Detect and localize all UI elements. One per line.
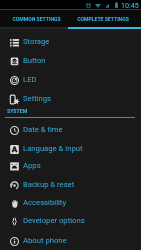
staticText: LED	[23, 75, 37, 84]
button[interactable]: Settings	[0, 90, 141, 109]
button[interactable]: Button	[0, 52, 141, 71]
button[interactable]: Storage	[0, 33, 141, 52]
staticText: COMPLETE SETTINGS	[77, 16, 129, 22]
button[interactable]: Apps	[0, 157, 141, 176]
button[interactable]: Accessibility	[0, 194, 141, 213]
button[interactable]: Developer options	[0, 212, 141, 231]
button[interactable]: Language & input	[0, 140, 141, 159]
staticText: Button	[23, 56, 46, 65]
button[interactable]: Backup & reset	[0, 176, 141, 195]
staticText: Developer options	[23, 216, 85, 225]
button[interactable]: COMMON SETTINGS	[0, 10, 68, 29]
staticText: Settings	[23, 94, 52, 103]
staticText: Backup & reset	[23, 180, 75, 189]
button[interactable]: LED	[0, 71, 141, 90]
button[interactable]: COMPLETE SETTINGS	[68, 10, 141, 29]
button[interactable]: About phone	[0, 232, 141, 250]
staticText: Date & time	[23, 125, 63, 134]
staticText: About phone	[23, 236, 67, 245]
button[interactable]: Date & time	[0, 121, 141, 140]
staticText: Storage	[23, 37, 50, 46]
staticText: Accessibility	[23, 198, 67, 207]
staticText: Language & input	[23, 144, 83, 153]
staticText: Apps	[23, 161, 41, 170]
staticText: COMMON SETTINGS	[12, 16, 61, 22]
staticText: SYSTEM	[7, 108, 28, 114]
staticText: 10:45	[121, 1, 139, 9]
